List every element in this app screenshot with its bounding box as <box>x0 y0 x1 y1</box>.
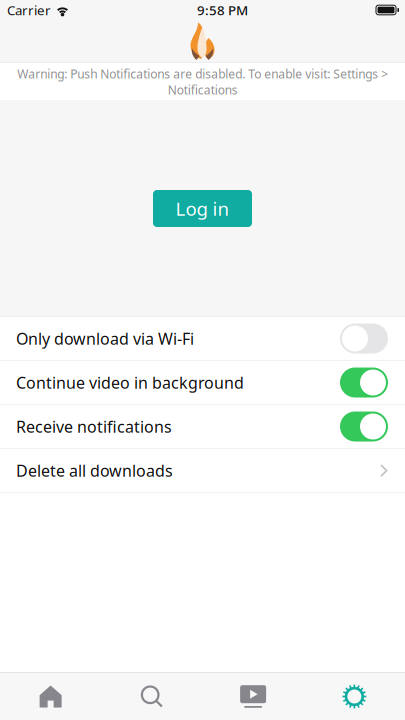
button[interactable]: Videos <box>202 673 304 720</box>
button[interactable]: Delete all downloads <box>0 449 405 493</box>
staticText: 9:58 PM <box>197 1 248 19</box>
staticText: Delete all downloads <box>16 460 173 481</box>
staticText: Receive notifications <box>16 416 172 437</box>
staticText: Carrier <box>7 1 51 19</box>
button[interactable]: Settings <box>304 673 405 720</box>
staticText: Only download via Wi-Fi <box>16 328 194 349</box>
button[interactable]: Receive notifications <box>0 405 405 449</box>
button[interactable]: Log in <box>153 190 252 227</box>
button[interactable]: Home <box>0 673 101 720</box>
staticText: Continue video in background <box>16 372 244 393</box>
button[interactable]: Search <box>101 673 202 720</box>
button[interactable]: Only download via Wi-Fi <box>0 317 405 361</box>
button[interactable]: Continue video in background <box>0 361 405 405</box>
staticText: Log in <box>175 196 229 221</box>
staticText: Warning: Push Notifications are disabled… <box>17 66 388 98</box>
